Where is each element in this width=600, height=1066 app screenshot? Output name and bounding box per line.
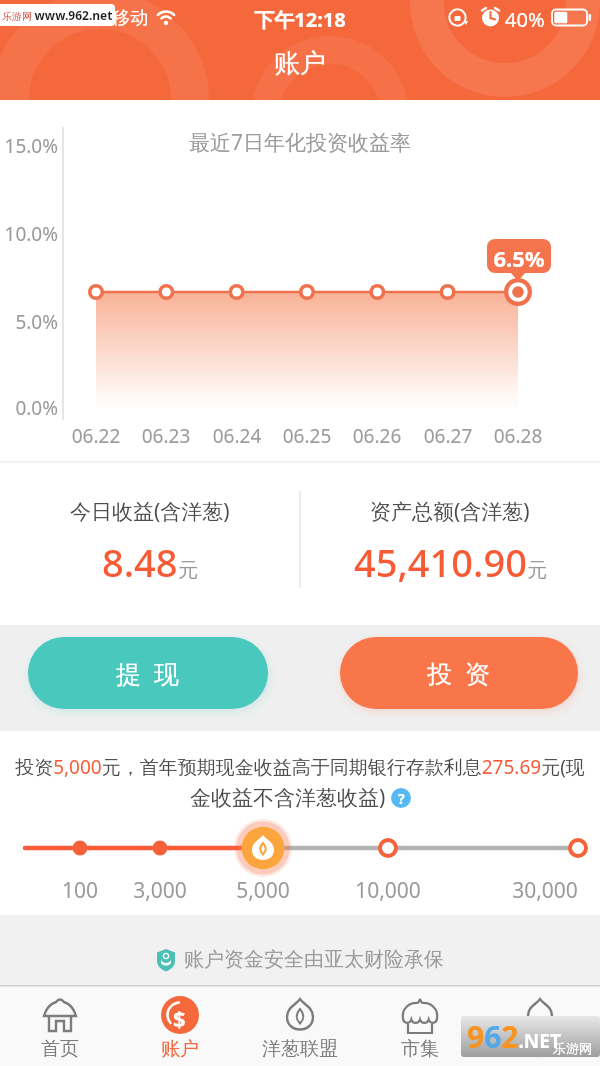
staticText: 06.25 [272,423,342,449]
staticText: 账户资金安全由亚太财险承保 [184,947,444,972]
button[interactable]: ? [391,788,411,808]
staticText: 洋葱联盟 [262,1037,338,1061]
staticText: 06.28 [483,423,553,449]
staticText: 元 [527,558,547,583]
staticText: 乐游网 [553,1040,592,1056]
staticText: 15.0% [0,133,58,159]
staticText: 6.5% [487,243,551,273]
staticText: 最近7日年化投资收益率 [0,128,600,157]
staticText: 5.0% [0,309,58,335]
button[interactable]: 账户 [120,985,240,1066]
staticText: 中国移动 [76,7,148,30]
staticText: 962.NET [467,1016,561,1057]
staticText: 06.27 [413,423,483,449]
staticText: 45,410.90 [354,536,527,588]
staticText: 下午12:18 [0,6,600,33]
staticText: 乐游网 www.962.net [2,7,113,23]
staticText: 首页 [41,1037,79,1061]
staticText: 06.22 [61,423,131,449]
staticText: 06.24 [202,423,272,449]
button[interactable]: 投 资 [340,637,578,709]
button[interactable]: 提 现 [28,637,268,709]
staticText: 5,000 [218,876,308,905]
staticText: ? [398,789,405,808]
button[interactable]: 洋葱联盟 [240,985,360,1066]
staticText: 40% [505,6,545,33]
staticText: 8.48 [102,536,178,588]
button[interactable]: 市集 [360,985,480,1066]
staticText: 06.23 [131,423,201,449]
staticText: 100 [35,876,125,905]
staticText: 30,000 [500,876,590,905]
staticText: 账户 [161,1037,199,1061]
button[interactable]: 我的 [480,985,600,1066]
staticText: 账户 [274,47,326,80]
button[interactable]: 首页 [0,985,120,1066]
staticText: 10,000 [343,876,433,905]
staticText: 06.26 [342,423,412,449]
staticText: 市集 [401,1037,439,1061]
staticText: 0.0% [0,395,58,421]
staticText: $ [173,1003,186,1033]
staticText: 我的 [521,1037,559,1061]
staticText: 今日收益(含洋葱) [70,497,230,526]
staticText: 资产总额(含洋葱) [370,497,530,526]
staticText: 金收益不含洋葱收益) [190,783,386,812]
staticText: 10.0% [0,221,58,247]
staticText: 3,000 [115,876,205,905]
staticText: 投资5,000元，首年预期现金收益高于同期银行存款利息275.69元(现 [0,754,600,780]
staticText: 提 现 [116,656,180,690]
staticText: 投 资 [427,656,491,690]
staticText: 元 [178,558,198,583]
